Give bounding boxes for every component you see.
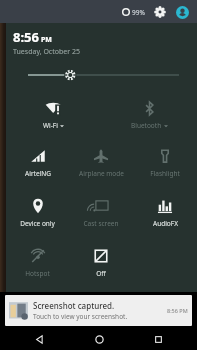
staticText: Tuesday, October 25 (13, 47, 80, 57)
button[interactable]: Brightness (6, 65, 197, 85)
button[interactable]: AirtelNG (6, 138, 69, 188)
staticText: Device only (20, 219, 55, 228)
button[interactable]: Recents (138, 329, 178, 350)
button[interactable]: User profile (175, 5, 189, 19)
staticText: Wi-Fi (43, 121, 58, 130)
button[interactable]: Home (79, 329, 119, 350)
button[interactable]: Off (69, 238, 133, 288)
button[interactable]: Cast screen (69, 188, 133, 238)
button[interactable]: Back (19, 329, 59, 350)
button[interactable]: Screenshot captured. (5, 295, 192, 326)
button[interactable]: AudioFX (133, 188, 197, 238)
staticText: 99% (132, 8, 145, 17)
button[interactable]: Bluetooth (101, 91, 197, 138)
button[interactable]: Flashlight (133, 138, 197, 188)
staticText: AudioFX (153, 219, 178, 228)
staticText: 8:56 (13, 28, 39, 46)
button[interactable]: 8:56 (13, 28, 80, 57)
staticText: Cast screen (83, 219, 119, 228)
staticText: Flashlight (150, 169, 180, 178)
staticText: PM (41, 35, 52, 45)
button[interactable]: Settings (153, 5, 167, 19)
button[interactable]: Device only (6, 188, 69, 238)
staticText: Off (96, 269, 106, 278)
staticText: Touch to view your screenshot. (33, 312, 128, 321)
staticText: Airplane mode (79, 169, 124, 178)
staticText: 8:56 PM (167, 307, 188, 314)
staticText: Screenshot captured. (33, 300, 115, 311)
button[interactable]: Wi-Fi (6, 91, 101, 138)
staticText: AirtelNG (25, 169, 51, 178)
staticText: Bluetooth (131, 121, 162, 130)
staticText: Hotspot (25, 269, 50, 278)
button[interactable]: Airplane mode (69, 138, 133, 188)
button[interactable]: Hotspot (6, 238, 69, 288)
